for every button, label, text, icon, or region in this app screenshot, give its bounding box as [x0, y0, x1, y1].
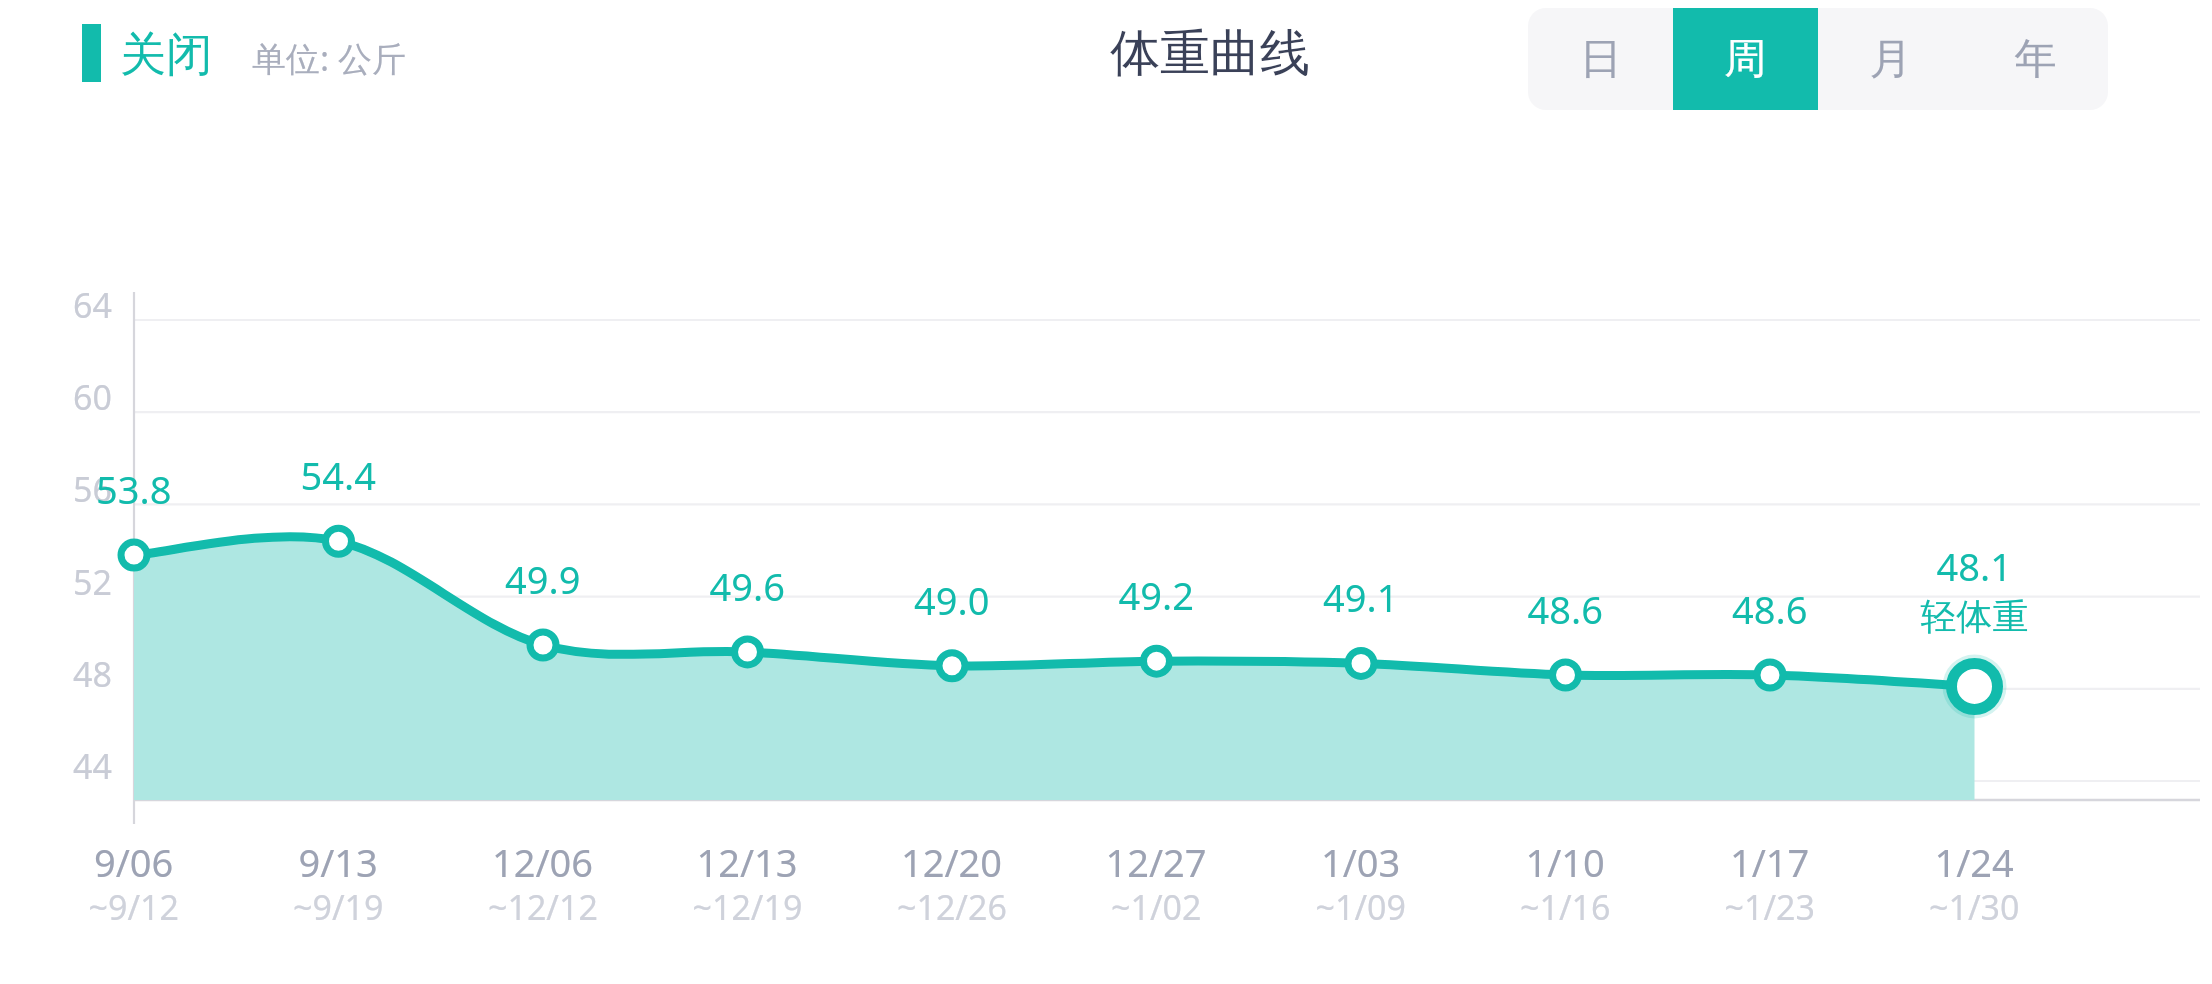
- button[interactable]: 关闭: [70, 18, 280, 92]
- button[interactable]: 周: [1673, 8, 1818, 110]
- button[interactable]: 月: [1818, 8, 1963, 110]
- button[interactable]: 年: [1963, 8, 2108, 110]
- button[interactable]: 日: [1528, 8, 1673, 110]
